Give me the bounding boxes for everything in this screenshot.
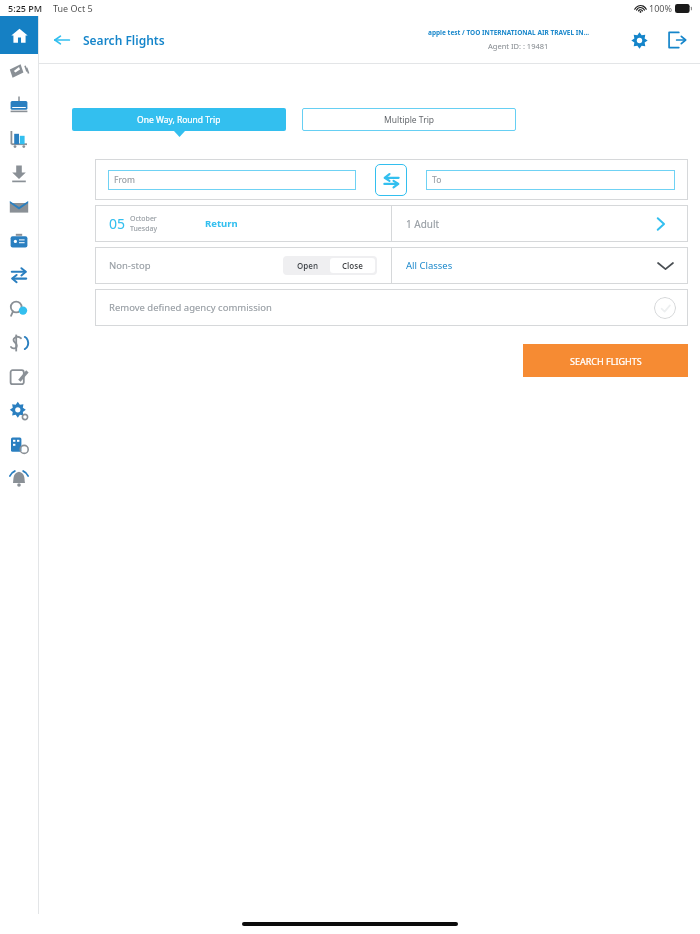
button[interactable]: Swap origin and destination — [375, 164, 407, 196]
staticText: Agent ID: : 19481 — [488, 41, 549, 51]
staticText: One Way, Round Trip — [137, 114, 221, 126]
button[interactable]: One Way, Round Trip — [72, 108, 286, 131]
button[interactable]: Back — [47, 25, 77, 55]
button[interactable]: Edit — [0, 360, 38, 394]
button[interactable]: 1 Adult — [392, 205, 688, 242]
button[interactable]: Business — [0, 224, 38, 258]
staticText: Remove defined agency commission — [109, 301, 272, 314]
button[interactable]: Hotels — [0, 88, 38, 122]
staticText: apple test / TOO INTERNATIONAL AIR TRAVE… — [428, 28, 608, 37]
button[interactable]: All Classes — [392, 247, 688, 284]
staticText: 1 Adult — [406, 217, 440, 231]
button[interactable]: Flights — [0, 54, 38, 88]
button[interactable]: Chat — [0, 292, 38, 326]
staticText: Return — [205, 217, 238, 230]
button[interactable]: Open — [285, 258, 330, 273]
button[interactable]: Notifications — [0, 462, 38, 496]
staticText: Close — [342, 260, 363, 271]
staticText: All Classes — [406, 259, 453, 272]
staticText: Search Flights — [83, 32, 165, 48]
staticText: Multiple Trip — [384, 114, 435, 126]
button[interactable]: From — [108, 170, 356, 190]
button[interactable]: 05 — [95, 205, 391, 242]
button[interactable]: Exchange — [0, 258, 38, 292]
button[interactable]: Settings — [624, 25, 654, 55]
button[interactable]: Mail — [0, 190, 38, 224]
button[interactable]: Remove defined agency commission — [95, 289, 688, 326]
button[interactable]: Settings — [0, 394, 38, 428]
staticText: 100% — [649, 2, 672, 14]
staticText: From — [114, 174, 135, 186]
button[interactable]: Home — [0, 16, 38, 54]
staticText: Non-stop — [109, 259, 151, 272]
staticText: Tuesday — [130, 224, 157, 234]
button[interactable]: SEARCH FLIGHTS — [523, 344, 688, 377]
staticText: To — [432, 174, 442, 186]
staticText: Tue Oct 5 — [53, 2, 93, 14]
button[interactable]: Reports — [0, 428, 38, 462]
button[interactable]: Packages — [0, 122, 38, 156]
button[interactable]: Downloads — [0, 156, 38, 190]
staticText: October — [130, 214, 157, 224]
button[interactable]: Close — [330, 258, 375, 273]
staticText: SEARCH FLIGHTS — [570, 355, 642, 367]
staticText: Open — [297, 260, 319, 271]
button[interactable]: To — [426, 170, 675, 190]
button[interactable]: Payments — [0, 326, 38, 360]
button[interactable]: Multiple Trip — [302, 108, 516, 131]
other: Remove commission checkbox — [654, 297, 676, 319]
staticText: 05 — [109, 214, 126, 233]
staticText: 5:25 PM — [8, 2, 43, 14]
button[interactable]: Logout — [662, 25, 692, 55]
